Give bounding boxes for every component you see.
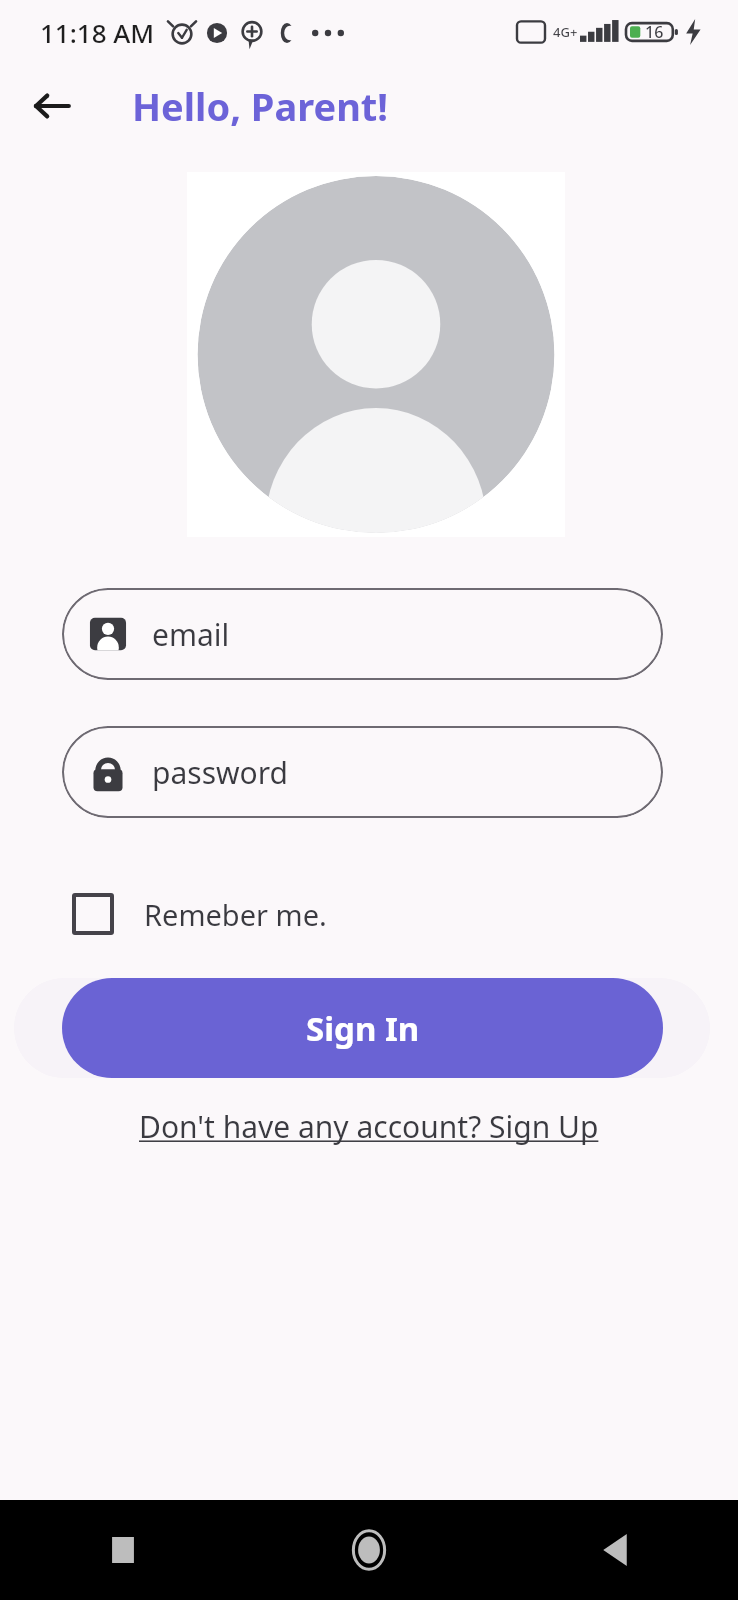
button[interactable]: Back [24,78,80,134]
staticText: 16 [645,21,664,43]
button[interactable]: email [62,588,663,680]
staticText: 11:18 AM [40,15,155,50]
button[interactable]: Back [492,1500,738,1600]
staticText: Remeber me. [144,895,327,934]
button[interactable]: Recent apps [0,1500,246,1600]
button[interactable]: password [62,726,663,818]
staticText: Hello, Parent! [132,80,389,132]
staticText: 4G+ [553,23,578,41]
staticText: Don't have any account? Sign Up [139,1106,599,1147]
button[interactable]: Sign In [62,978,663,1078]
staticText: Sign In [306,1006,420,1051]
staticText: email [152,614,230,655]
button[interactable]: Remeber me. [72,884,343,944]
staticText: password [152,752,288,793]
button[interactable]: Home [246,1500,492,1600]
button[interactable]: Don't have any account? Sign Up [127,1100,611,1153]
